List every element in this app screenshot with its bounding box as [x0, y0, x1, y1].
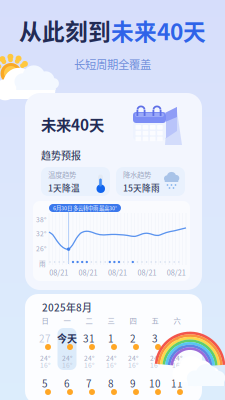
staticText: 未来40天 — [41, 113, 104, 135]
button[interactable]: 16° — [122, 360, 144, 370]
staticText: 从此刻到 — [19, 14, 111, 47]
staticText: 长短周期全覆盖 — [74, 56, 151, 72]
button[interactable] — [34, 387, 56, 395]
button[interactable]: 二 — [78, 315, 100, 326]
button[interactable]: 24° — [56, 353, 78, 363]
staticText: 38° — [36, 214, 46, 224]
staticText: 雨 — [39, 258, 46, 268]
staticText: 16° — [150, 360, 160, 370]
button[interactable]: 降水趋势 — [116, 167, 185, 196]
staticText: 4 — [174, 331, 180, 345]
staticText: 16° — [62, 360, 72, 370]
button[interactable] — [78, 342, 100, 350]
staticText: 降水趋势 — [123, 169, 151, 179]
staticText: 1天降温 — [48, 181, 80, 194]
button[interactable]: 2 — [122, 331, 144, 345]
button[interactable] — [122, 387, 144, 395]
staticText: 24° — [150, 353, 160, 363]
button[interactable]: 16° — [100, 360, 122, 370]
staticText: 6 — [64, 376, 70, 390]
staticText: 3 — [152, 331, 158, 345]
button[interactable] — [100, 387, 122, 395]
button[interactable]: 8 — [100, 376, 122, 390]
button[interactable]: 三 — [100, 315, 122, 326]
staticText: 24° — [62, 353, 72, 363]
staticText: 16° — [84, 360, 94, 370]
button[interactable]: 24° — [144, 353, 166, 363]
button[interactable]: 温度趋势 — [41, 167, 110, 196]
staticText: 27 — [39, 331, 51, 345]
staticText: 趋势预报 — [41, 148, 81, 162]
staticText: 16° — [106, 360, 116, 370]
button[interactable]: 24° — [78, 353, 100, 363]
button[interactable]: 24° — [166, 353, 188, 363]
staticText: 16° — [172, 360, 182, 370]
button[interactable] — [56, 387, 78, 395]
button[interactable] — [166, 387, 188, 395]
button[interactable]: 16° — [56, 360, 78, 370]
staticText: 24° — [40, 353, 50, 363]
button[interactable] — [78, 387, 100, 395]
staticText: 7 — [86, 376, 92, 390]
button[interactable]: 10 — [144, 376, 166, 390]
button[interactable] — [122, 342, 144, 350]
staticText: 三 — [107, 315, 114, 326]
staticText: 8 — [108, 376, 114, 390]
button[interactable] — [144, 342, 166, 350]
button[interactable]: 6 — [56, 376, 78, 390]
staticText: 二 — [85, 315, 92, 326]
button[interactable]: 1 — [100, 331, 122, 345]
button[interactable]: 5 — [34, 376, 56, 390]
staticText: 08/21 — [108, 267, 127, 278]
staticText: 六 — [173, 315, 180, 326]
staticText: 24° — [106, 353, 116, 363]
button[interactable]: 16° — [144, 360, 166, 370]
staticText: 08/21 — [137, 267, 156, 278]
staticText: 10 — [149, 376, 161, 390]
button[interactable]: 24° — [100, 353, 122, 363]
button[interactable] — [34, 342, 56, 350]
button[interactable]: 7 — [78, 376, 100, 390]
staticText: 一 — [63, 315, 70, 326]
button[interactable]: 31 — [78, 331, 100, 345]
button[interactable] — [56, 342, 78, 350]
button[interactable] — [144, 387, 166, 395]
staticText: 今天 — [57, 331, 77, 345]
staticText: 未来40天 — [111, 14, 206, 47]
staticText: 9 — [130, 376, 136, 390]
button[interactable]: 今天 — [56, 331, 78, 345]
staticText: 08/21 — [79, 267, 98, 278]
button[interactable]: 4 — [166, 331, 188, 345]
button[interactable]: 16° — [34, 360, 56, 370]
button[interactable]: 27 — [34, 331, 56, 345]
staticText: 08/21 — [49, 267, 68, 278]
staticText: 2 — [130, 331, 136, 345]
button[interactable]: 16° — [78, 360, 100, 370]
button[interactable]: 日 — [34, 315, 56, 326]
staticText: 26° — [36, 243, 46, 253]
staticText: 08/21 — [167, 267, 186, 278]
button[interactable]: 六 — [166, 315, 188, 326]
button[interactable] — [166, 342, 188, 350]
staticText: 5 — [42, 376, 48, 390]
staticText: 五 — [151, 315, 158, 326]
button[interactable]: 11 — [166, 376, 188, 390]
button[interactable] — [100, 342, 122, 350]
staticText: 四 — [129, 315, 136, 326]
staticText: 16° — [128, 360, 138, 370]
button[interactable]: 24° — [34, 353, 56, 363]
staticText: 15天降雨 — [123, 181, 160, 194]
button[interactable]: 五 — [144, 315, 166, 326]
staticText: 2025年8月 — [42, 300, 92, 314]
button[interactable]: 3 — [144, 331, 166, 345]
staticText: 32° — [36, 228, 46, 238]
button[interactable]: 16° — [166, 360, 188, 370]
button[interactable]: 一 — [56, 315, 78, 326]
staticText: 31 — [83, 331, 95, 345]
staticText: 日 — [41, 315, 48, 326]
button[interactable]: 24° — [122, 353, 144, 363]
button[interactable]: 四 — [122, 315, 144, 326]
button[interactable]: 9 — [122, 376, 144, 390]
staticText: 24° — [84, 353, 94, 363]
staticText: 16° — [40, 360, 50, 370]
